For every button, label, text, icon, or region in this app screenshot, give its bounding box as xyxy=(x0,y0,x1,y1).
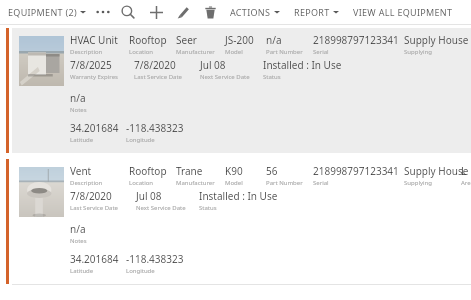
staticText: 34.201684 xyxy=(70,121,119,135)
staticText: Serial xyxy=(313,48,329,56)
staticText: n/a xyxy=(70,222,86,236)
staticText: Warranty Expires xyxy=(70,73,118,81)
staticText: Longitude xyxy=(126,136,155,144)
staticText: Supplying xyxy=(404,179,432,187)
staticText: Latitude xyxy=(70,136,94,144)
button[interactable]: Add xyxy=(144,0,168,24)
staticText: -118.438323 xyxy=(126,252,184,266)
staticText: Last Service Date xyxy=(70,204,118,212)
staticText: JS-200 xyxy=(225,33,254,47)
staticText: Notes xyxy=(70,106,87,114)
staticText: L xyxy=(461,164,467,178)
staticText: Latitude xyxy=(70,267,94,275)
button[interactable]: EQUIPMENT (2) xyxy=(6,3,88,21)
staticText: VIEW ALL EQUIPMENT xyxy=(353,6,453,18)
staticText: Next Service Date xyxy=(200,73,250,81)
staticText: -118.438323 xyxy=(126,121,184,135)
staticText: Longitude xyxy=(126,267,155,275)
staticText: Vent xyxy=(70,164,92,178)
staticText: Supply House xyxy=(404,33,469,47)
staticText: 34.201684 xyxy=(70,252,119,266)
staticText: EQUIPMENT (2) xyxy=(8,6,77,18)
staticText: 7/8/2020 xyxy=(134,58,176,72)
button[interactable]: Vent xyxy=(0,159,471,284)
staticText: HVAC Unit xyxy=(70,33,118,47)
staticText: Seer xyxy=(176,33,197,47)
staticText: Model xyxy=(225,48,243,56)
staticText: Installed : In Use xyxy=(263,58,342,72)
staticText: Rooftop xyxy=(129,164,167,178)
staticText: n/a xyxy=(266,33,282,47)
button[interactable]: HVAC Unit xyxy=(0,28,471,153)
staticText: Manufacturer xyxy=(176,48,215,56)
staticText: Location xyxy=(129,179,154,187)
staticText: Location xyxy=(129,48,154,56)
staticText: Trane xyxy=(176,164,203,178)
button[interactable]: Edit xyxy=(171,0,195,24)
staticText: Last Service Date xyxy=(134,73,182,81)
button[interactable]: REPORT xyxy=(292,3,341,21)
staticText: Notes xyxy=(70,237,87,245)
staticText: Rooftop xyxy=(129,33,167,47)
button[interactable]: Search xyxy=(116,0,140,24)
staticText: Jul 08 xyxy=(200,58,226,72)
staticText: ACTIONS xyxy=(230,6,271,18)
button[interactable]: Delete xyxy=(198,0,222,24)
staticText: REPORT xyxy=(294,6,330,18)
staticText: Status xyxy=(263,73,281,81)
staticText: 7/8/2025 xyxy=(70,58,112,72)
staticText: Are xyxy=(461,179,471,187)
staticText: Supply House xyxy=(404,164,469,178)
staticText: Installed : In Use xyxy=(199,189,278,203)
staticText: Description xyxy=(70,48,103,56)
staticText: Status xyxy=(199,204,217,212)
staticText: n/a xyxy=(70,91,86,105)
staticText: Part Number xyxy=(266,179,303,187)
staticText: Jul 08 xyxy=(136,189,162,203)
staticText: 218998797123341 xyxy=(313,33,399,47)
button[interactable]: More options xyxy=(92,2,114,22)
button[interactable]: VIEW ALL EQUIPMENT xyxy=(351,3,455,21)
staticText: Manufacturer xyxy=(176,179,215,187)
staticText: 218998797123341 xyxy=(313,164,399,178)
staticText: Serial xyxy=(313,179,329,187)
staticText: 56 xyxy=(266,164,278,178)
staticText: Supplying xyxy=(404,48,432,56)
staticText: K90 xyxy=(225,164,243,178)
staticText: Description xyxy=(70,179,103,187)
staticText: Model xyxy=(225,179,243,187)
staticText: 7/8/2020 xyxy=(70,189,112,203)
button[interactable]: ACTIONS xyxy=(228,3,282,21)
staticText: Part Number xyxy=(266,48,303,56)
staticText: Next Service Date xyxy=(136,204,186,212)
